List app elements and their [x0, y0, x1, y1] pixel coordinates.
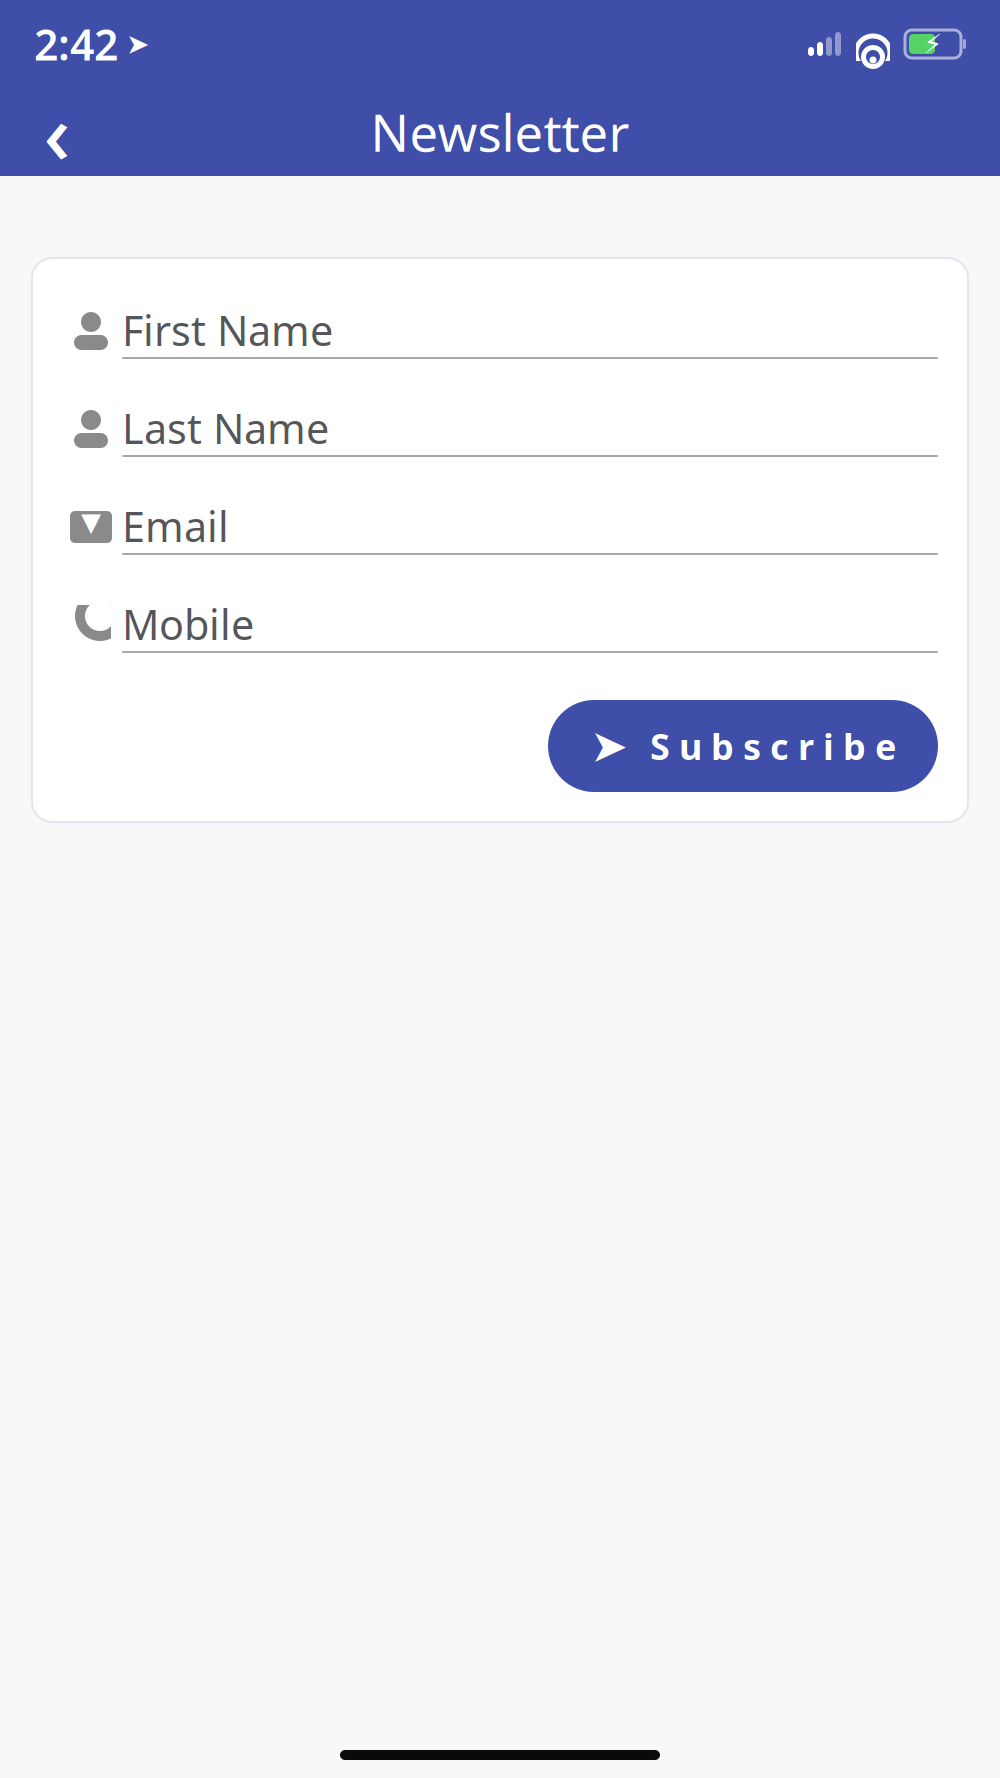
staticText: First Name: [122, 303, 333, 357]
staticText: ▾: [81, 498, 101, 544]
staticText: Email: [122, 499, 229, 553]
staticText: 2:42: [34, 16, 118, 72]
staticText: ➤: [126, 28, 149, 60]
button[interactable]: ➤: [548, 700, 938, 792]
staticText: S u b s c r i b e: [650, 722, 896, 770]
staticText: Last Name: [122, 401, 329, 455]
staticText: ➤: [590, 720, 628, 772]
staticText: Mobile: [122, 597, 254, 651]
staticText: ‹: [43, 77, 70, 187]
staticText: Newsletter: [370, 98, 629, 166]
staticText: ⚡︎: [923, 29, 942, 59]
button[interactable]: Back: [14, 89, 100, 175]
